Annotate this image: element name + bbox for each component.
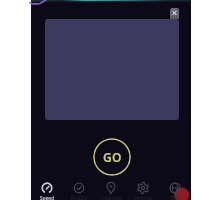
- button[interactable]: Results: [63, 176, 95, 200]
- staticText: GO: [103, 149, 122, 165]
- button[interactable]: Settings: [127, 176, 159, 200]
- button[interactable]: VPN: [159, 176, 191, 200]
- staticText: Results: [63, 195, 95, 200]
- staticText: Settings: [127, 195, 159, 200]
- button[interactable]: Coverage: [95, 176, 127, 200]
- staticText: Speed: [31, 195, 63, 200]
- button[interactable]: Speed: [31, 176, 63, 200]
- button[interactable]: GO: [93, 138, 131, 176]
- staticText: VPN: [159, 195, 191, 200]
- staticText: Coverage: [95, 195, 127, 200]
- button[interactable]: Close ad: [170, 8, 179, 19]
